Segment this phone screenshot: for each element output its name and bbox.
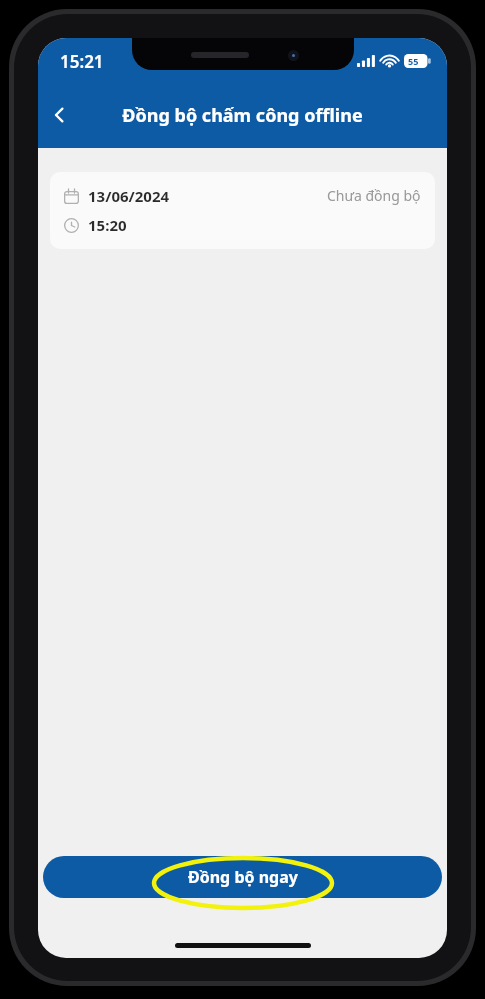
button[interactable]: Đồng bộ ngay <box>43 856 442 898</box>
button[interactable]: Back <box>38 93 82 137</box>
staticText: 15:21 <box>60 50 104 73</box>
staticText: 13/06/2024 <box>88 186 170 206</box>
staticText: Đồng bộ chấm công offline <box>84 103 401 128</box>
staticText: 55 <box>408 55 419 67</box>
staticText: 15:20 <box>88 215 127 235</box>
staticText: Đồng bộ ngay <box>188 866 298 888</box>
staticText: Chưa đồng bộ <box>327 186 421 205</box>
button[interactable]: 13/06/2024 <box>50 172 435 249</box>
